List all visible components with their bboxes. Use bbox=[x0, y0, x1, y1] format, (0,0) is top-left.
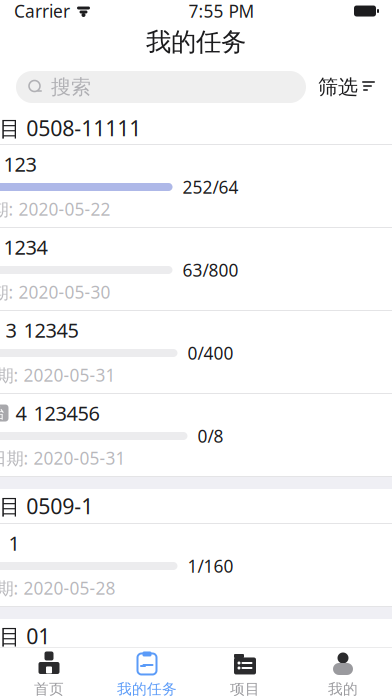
staticText: 截止日期: bbox=[0, 280, 18, 303]
staticText: 截止日期: bbox=[0, 197, 18, 220]
button[interactable]: 未开始 bbox=[0, 311, 392, 394]
button[interactable]: 项目 bbox=[196, 646, 294, 696]
staticText: 0/8 bbox=[197, 424, 223, 447]
button[interactable]: 未开始 bbox=[0, 394, 392, 477]
staticText: 123 bbox=[3, 151, 36, 177]
staticText: 123456 bbox=[33, 400, 99, 426]
staticText: 2020-05-22 bbox=[18, 197, 110, 220]
staticText: 首页 bbox=[34, 680, 64, 696]
staticText: 项目 0508-11111 bbox=[0, 114, 141, 142]
staticText: 2020-05-28 bbox=[23, 576, 115, 599]
staticText: 2020-05-31 bbox=[33, 446, 125, 469]
button[interactable]: 正常 bbox=[0, 654, 392, 696]
staticText: 63/800 bbox=[182, 258, 238, 281]
staticText: 截止日期: bbox=[0, 576, 23, 599]
staticText: 我的任务 bbox=[146, 26, 246, 57]
staticText: 4 bbox=[15, 400, 26, 426]
button[interactable]: 首页 bbox=[0, 646, 98, 696]
staticText: 7:55 PM bbox=[188, 0, 254, 22]
staticText: 252/64 bbox=[182, 175, 238, 198]
staticText: 1234 bbox=[3, 234, 47, 260]
staticText: 我的任务 bbox=[117, 680, 177, 696]
staticText: 项目 bbox=[230, 680, 260, 696]
button[interactable]: 延误 bbox=[0, 145, 392, 228]
staticText: 0/400 bbox=[187, 341, 233, 364]
staticText: 搜索 bbox=[51, 75, 91, 99]
staticText: 项目 01 bbox=[0, 622, 50, 650]
staticText: 项目 0509-1 bbox=[0, 492, 93, 520]
staticText: 1/160 bbox=[187, 554, 233, 577]
staticText: 我的 bbox=[328, 680, 358, 696]
button[interactable]: 正常 bbox=[0, 228, 392, 311]
staticText: Carrier bbox=[14, 0, 70, 22]
staticText: 筛选 bbox=[318, 75, 358, 99]
button[interactable]: 筛选 bbox=[318, 75, 376, 99]
staticText: 2020-05-30 bbox=[18, 280, 110, 303]
button[interactable]: 正常 bbox=[0, 524, 392, 607]
staticText: 1 bbox=[8, 530, 19, 556]
staticText: 0/100 bbox=[187, 684, 233, 696]
staticText: 截止日期: bbox=[0, 363, 23, 386]
staticText: 12345 bbox=[23, 317, 78, 343]
button[interactable]: 我的 bbox=[294, 646, 392, 696]
button[interactable]: 我的任务 bbox=[98, 646, 196, 696]
staticText: 截止日期: bbox=[0, 446, 33, 469]
staticText: 2020-05-31 bbox=[23, 363, 115, 386]
staticText: 未开始 bbox=[0, 404, 4, 422]
staticText: 3 bbox=[5, 317, 16, 343]
